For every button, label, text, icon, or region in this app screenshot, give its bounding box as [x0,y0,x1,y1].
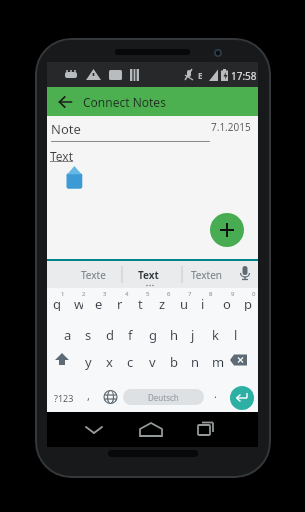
staticText: Deutsch [148,392,179,403]
staticText: j [191,326,195,344]
button[interactable]: Text [138,268,159,282]
staticText: y [85,353,92,371]
staticText: c [127,353,134,371]
staticText: b [170,353,178,371]
staticText: l [234,326,238,344]
staticText: m [212,353,225,371]
staticText: 6 [167,290,171,298]
staticText: k [212,326,219,344]
button[interactable] [135,414,167,446]
button[interactable]: Text [50,148,74,164]
staticText: a [64,326,72,344]
staticText: 0 [252,290,256,298]
button[interactable] [188,414,220,446]
staticText: 7 [188,290,192,298]
staticText: r [117,295,126,311]
staticText: E [198,70,203,81]
staticText: 7.1.2015 [211,120,251,134]
staticText: f [128,326,133,344]
staticText: e [95,295,104,311]
staticText: ?123 [54,392,74,404]
button[interactable]: Texten [191,268,223,282]
staticText: w [74,295,83,311]
staticText: 9 [231,290,235,298]
button[interactable] [210,213,244,247]
staticText: p [244,295,253,311]
staticText: 3 [103,290,107,298]
staticText: . [214,386,217,401]
staticText: Note [51,120,81,138]
staticText: 4 [125,290,129,298]
staticText: v [149,353,156,371]
staticText: 5 [146,290,150,298]
staticText: 8 [209,290,213,298]
staticText: s [85,326,92,344]
button[interactable] [47,87,83,116]
staticText: d [106,326,114,344]
staticText: z [159,295,168,311]
staticText: t [138,295,147,311]
staticText: q [53,295,62,311]
staticText: i [201,295,210,311]
button[interactable] [230,386,254,410]
button[interactable]: Texte [81,268,106,282]
button[interactable] [78,414,110,446]
staticText: 2 [82,290,86,298]
staticText: g [149,326,157,344]
button[interactable] [123,389,204,405]
staticText: h [170,326,179,344]
staticText: x [106,353,113,371]
staticText: 1 [61,290,65,298]
staticText: u [180,295,189,311]
staticText: , [87,388,90,403]
staticText: Connect Notes [83,94,166,110]
button[interactable]: 1 [47,288,258,412]
staticText: o [223,295,232,311]
staticText: 17:58 [231,69,257,83]
staticText: n [191,353,200,371]
